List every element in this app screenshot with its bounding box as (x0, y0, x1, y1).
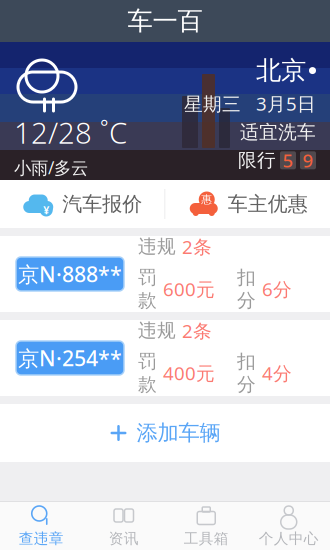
button[interactable]: 个人中心 (247, 502, 330, 550)
button[interactable]: 惠 (165, 180, 330, 228)
staticText: 车主优惠 (228, 192, 308, 216)
staticText: 北京 (256, 55, 306, 86)
button[interactable]: 京N·254** (0, 320, 330, 396)
button[interactable]: 查违章 (0, 502, 82, 550)
staticText: 9 (302, 148, 313, 173)
staticText: 罚款 (138, 350, 157, 396)
button[interactable]: 添加车辆 (0, 404, 330, 462)
staticText: 违规 (138, 319, 176, 342)
staticText: 车一百 (127, 5, 202, 36)
staticText: 添加车辆 (136, 420, 220, 446)
staticText: 限行 (238, 149, 276, 172)
staticText: 12/28 ˚C (14, 113, 127, 152)
staticText: 违规 (138, 235, 176, 258)
staticText: 适宜洗车 (240, 121, 316, 144)
button[interactable]: 资讯 (82, 502, 165, 550)
staticText: 扣分 (237, 266, 256, 312)
staticText: 小雨/多云 (14, 156, 88, 179)
staticText: 2条 (182, 234, 212, 259)
staticText: 查违章 (19, 529, 64, 547)
staticText: 京N·888** (18, 260, 122, 288)
staticText: 6分 (262, 277, 292, 301)
staticText: 京N·254** (18, 344, 122, 372)
staticText: 星期三 3月5日 (184, 91, 316, 116)
staticText: 5 (282, 148, 293, 173)
staticText: 汽车报价 (62, 192, 142, 216)
staticText: 2条 (182, 318, 212, 343)
staticText: 个人中心 (259, 529, 319, 547)
staticText: 600元 (163, 277, 215, 301)
staticText: 扣分 (237, 350, 256, 396)
staticText: 惠 (201, 193, 212, 206)
staticText: 工具箱 (184, 529, 229, 547)
staticText: 400元 (163, 361, 215, 385)
button[interactable]: 工具箱 (165, 502, 247, 550)
staticText: ¥ (43, 203, 49, 217)
button[interactable]: 京N·888** (0, 236, 330, 312)
button[interactable]: ¥ (0, 180, 164, 228)
staticText: 资讯 (109, 529, 139, 547)
staticText: 4分 (262, 361, 292, 385)
staticText: 罚款 (138, 266, 157, 312)
